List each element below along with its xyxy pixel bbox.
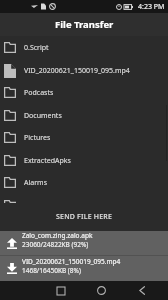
staticText: Podcasts [24,88,54,98]
staticText: 23060/24822KB (92%) [22,240,89,249]
staticText: VID_20200621_150019_095.mp4 [24,66,130,76]
staticText: Zalo_com.zing.zalo.apk [22,231,93,240]
button[interactable]: SEND FILE HERE [0,203,168,231]
button[interactable]: Android [0,194,168,203]
button[interactable]: ExtractedApks [0,149,168,172]
staticText: File Transfer [55,18,114,31]
staticText: 1468/16450KB (8%) [22,266,81,275]
staticText: Pictures [24,133,51,143]
staticText: 0.Script [24,43,49,53]
staticText: VID_20200621_150019_095.mp4 [22,257,121,266]
staticText: Alarms [24,178,47,188]
staticText: 4:23 PM [138,2,165,12]
button[interactable]: Upload [0,231,168,255]
other: Download [7,263,17,274]
staticText: ExtractedApks [24,156,71,166]
button[interactable]: Download [0,256,168,281]
staticText: SEND FILE HERE [56,212,113,222]
staticText: Documents [24,111,62,121]
button[interactable]: Alarms [0,171,168,194]
button[interactable]: 0.Script [0,36,168,59]
button[interactable]: Podcasts [0,81,168,104]
button[interactable]: Recents [51,281,71,300]
button[interactable]: Home [91,281,111,300]
button[interactable]: VID_20200621_150019_095.mp4 [0,59,168,82]
button[interactable]: Back [132,281,152,300]
button[interactable]: Documents [0,104,168,127]
button[interactable]: Pictures [0,126,168,149]
other: Upload [7,238,17,249]
